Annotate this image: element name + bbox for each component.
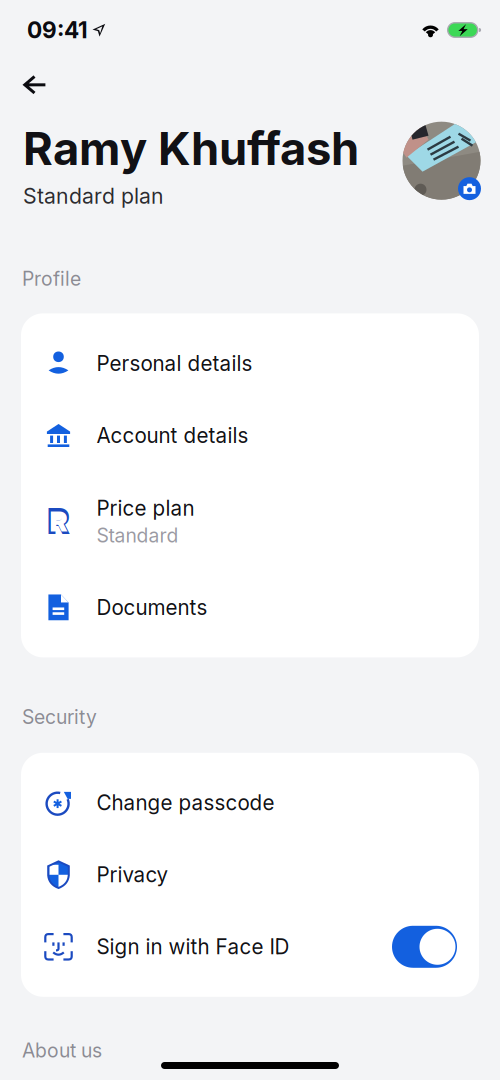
staticText: Personal details <box>96 351 252 376</box>
staticText: Privacy <box>96 862 168 887</box>
staticText: 09:41 <box>27 16 88 44</box>
button[interactable]: Privacy <box>21 839 479 911</box>
staticText: Sign in with Face ID <box>96 934 289 959</box>
staticText: Account details <box>96 423 248 448</box>
button[interactable]: Sign in with Face ID <box>21 911 479 983</box>
staticText: About us <box>22 1039 102 1062</box>
staticText: Ramy Khuffash <box>23 121 359 176</box>
button[interactable]: Documents <box>21 571 479 643</box>
button[interactable]: Change profile photo <box>402 121 481 200</box>
button[interactable]: Change passcode <box>21 767 479 839</box>
staticText: Change passcode <box>96 790 274 815</box>
button[interactable]: Account details <box>21 399 479 471</box>
staticText: Security <box>22 705 97 729</box>
staticText: Profile <box>22 267 81 290</box>
staticText: Standard <box>96 524 178 547</box>
staticText: R <box>49 505 67 538</box>
staticText: Standard plan <box>23 183 164 209</box>
staticText: Price plan <box>96 496 194 521</box>
staticText: Documents <box>96 595 207 620</box>
button[interactable]: Back <box>11 66 58 104</box>
button[interactable]: Personal details <box>21 327 479 399</box>
button[interactable]: R <box>21 471 479 571</box>
staticText: R <box>47 500 70 542</box>
